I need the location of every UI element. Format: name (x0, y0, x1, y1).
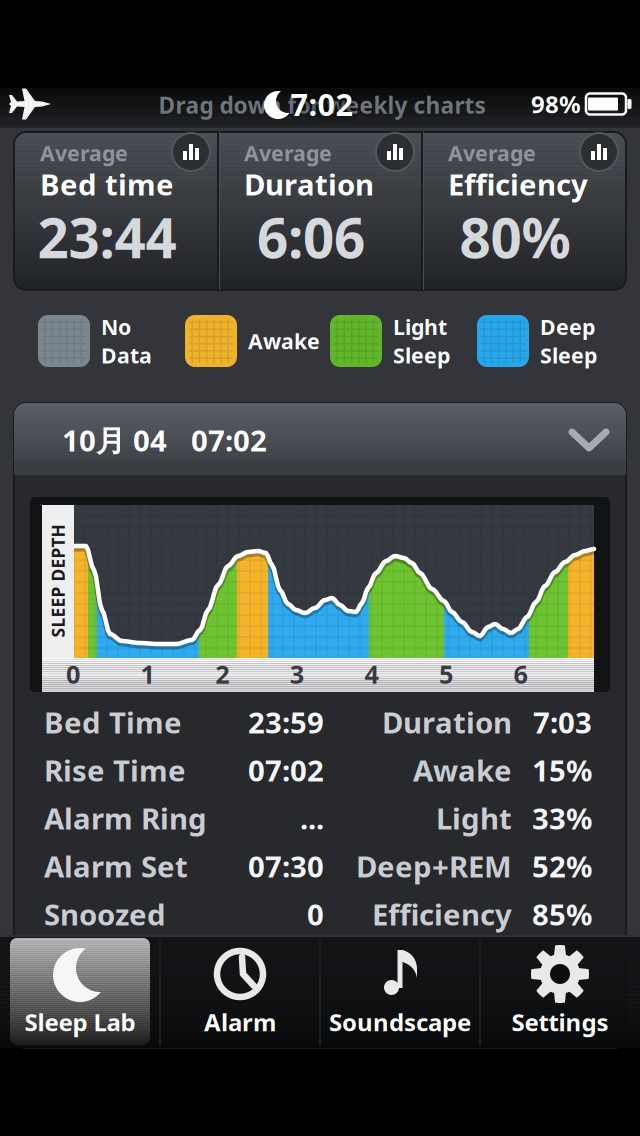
staticText: No (101, 313, 131, 341)
staticText: Bed time (40, 164, 174, 203)
staticText: 98% (531, 88, 581, 120)
staticText: Settings (511, 1006, 608, 1038)
staticText: Deep+REM (356, 846, 512, 885)
staticText: Alarm Set (44, 846, 188, 885)
staticText: Average (448, 139, 536, 167)
staticText: 6 (514, 657, 528, 691)
staticText: 52% (532, 846, 592, 885)
staticText: 33% (532, 798, 592, 837)
staticText: 2 (215, 657, 229, 691)
staticText: Soundscape (329, 1006, 471, 1038)
staticText: 85% (532, 894, 592, 933)
button[interactable]: Sleep Lab (0, 935, 160, 1048)
staticText: Duration (382, 702, 512, 741)
staticText: 5 (439, 657, 453, 691)
staticText: Awake (413, 750, 512, 789)
staticText: 6:06 (257, 201, 365, 273)
staticText: Sleep Lab (24, 1006, 135, 1038)
staticText: Alarm (204, 1006, 276, 1038)
staticText: Data (101, 341, 152, 369)
staticText: 3 (290, 657, 304, 691)
staticText: Duration (244, 164, 374, 203)
staticText: Light (436, 798, 512, 837)
staticText: 7:03 (533, 702, 592, 741)
staticText: Average (40, 139, 128, 167)
button[interactable]: Weekly chart (376, 133, 414, 171)
staticText: Rise Time (44, 750, 186, 789)
staticText: Drag down for weekly charts (158, 90, 485, 120)
staticText: Average (244, 139, 332, 167)
staticText: 23:44 (37, 201, 176, 273)
staticText: Sleep (393, 341, 450, 369)
staticText: ... (300, 798, 324, 837)
staticText: Bed Time (44, 702, 182, 741)
staticText: 10月 04 07:02 (62, 420, 267, 459)
staticText: Deep (540, 313, 595, 341)
staticText: Light (393, 313, 447, 341)
button[interactable]: Soundscape (320, 935, 480, 1048)
staticText: Alarm Ring (44, 798, 207, 837)
button[interactable]: Weekly chart (172, 133, 210, 171)
staticText: Efficiency (448, 164, 588, 203)
staticText: SLEEP DEPTH (1, 569, 114, 592)
staticText: 7:02 (290, 84, 353, 124)
staticText: 07:02 (248, 750, 324, 789)
staticText: 0 (307, 894, 324, 933)
staticText: 80% (459, 201, 570, 273)
staticText: 07:30 (248, 846, 324, 885)
button[interactable]: 10月 04 07:02 (14, 403, 626, 475)
staticText: Efficiency (372, 894, 512, 933)
button[interactable]: Weekly chart (580, 133, 618, 171)
staticText: Sleep (540, 341, 597, 369)
staticText: 0 (66, 657, 80, 691)
staticText: 4 (364, 657, 378, 691)
staticText: Awake (248, 327, 320, 355)
staticText: 1 (141, 657, 155, 691)
button[interactable]: Alarm (160, 935, 320, 1048)
staticText: 15% (532, 750, 592, 789)
button[interactable]: Settings (480, 935, 640, 1048)
staticText: 23:59 (248, 702, 324, 741)
staticText: Snoozed (44, 894, 166, 933)
